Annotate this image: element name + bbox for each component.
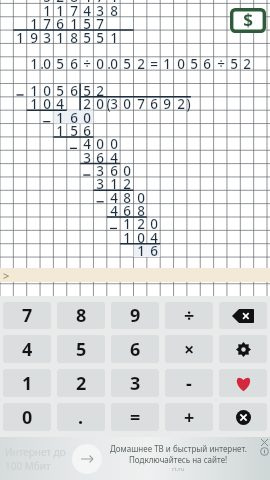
staticText: 1: [56, 29, 64, 47]
staticText: 3: [130, 371, 141, 396]
staticText: 8: [70, 29, 78, 47]
staticText: 1: [56, 109, 64, 127]
staticText: 6: [96, 149, 104, 167]
staticText: 0: [43, 55, 51, 73]
staticText: 2: [243, 55, 251, 73]
staticText: .: [40, 55, 44, 73]
button[interactable]: 6: [111, 335, 159, 363]
staticText: 7: [43, 15, 51, 33]
staticText: 3: [110, 95, 118, 113]
staticText: 8: [123, 189, 131, 207]
staticText: 5: [83, 82, 91, 100]
staticText: 0: [150, 215, 158, 233]
staticText: 3: [96, 162, 104, 180]
button[interactable]: Интернет до: [0, 437, 270, 480]
staticText: 6: [70, 82, 78, 100]
staticText: 2: [56, 0, 64, 6]
staticText: $: [243, 9, 253, 32]
staticText: 7: [96, 0, 104, 6]
staticText: 0: [123, 95, 131, 113]
staticText: .: [107, 55, 111, 73]
button[interactable]: -: [165, 369, 213, 397]
staticText: 100 Мбит: [5, 459, 51, 473]
button[interactable]: ÷: [165, 302, 213, 329]
staticText: 5: [56, 82, 64, 100]
button[interactable]: Favorites: [219, 369, 267, 397]
staticText: 8: [70, 0, 78, 6]
staticText: .: [78, 405, 84, 430]
staticText: 2: [96, 82, 104, 100]
button[interactable]: 0: [3, 403, 51, 431]
staticText: 0: [96, 55, 104, 73]
staticText: -: [186, 371, 192, 396]
staticText: 1: [43, 2, 51, 20]
staticText: 2: [177, 95, 185, 113]
button[interactable]: 7: [3, 302, 51, 329]
staticText: 1: [137, 242, 145, 260]
staticText: 4: [83, 0, 91, 6]
button[interactable]: 4: [3, 335, 51, 363]
button[interactable]: Close ad: [260, 438, 269, 447]
staticText: 9: [163, 95, 171, 113]
staticText: 1: [16, 29, 24, 47]
staticText: 8: [110, 2, 118, 20]
staticText: ÷: [184, 303, 195, 328]
staticText: 1: [163, 55, 171, 73]
staticText: 6: [83, 122, 91, 140]
button[interactable]: Ad info: [260, 447, 269, 456]
staticText: 8: [137, 202, 145, 220]
staticText: 0: [137, 229, 145, 247]
staticText: +: [184, 405, 195, 430]
staticText: 0: [43, 95, 51, 113]
staticText: 1: [123, 229, 131, 247]
other: Backspace: [232, 309, 254, 323]
button[interactable]: 5: [57, 335, 105, 363]
button[interactable]: 3: [111, 369, 159, 397]
staticText: 6: [130, 337, 141, 362]
staticText: +: [30, 0, 38, 6]
staticText: 1: [30, 95, 38, 113]
button[interactable]: ×: [165, 335, 213, 363]
staticText: 0: [123, 162, 131, 180]
staticText: ÷: [217, 55, 225, 73]
button[interactable]: =: [111, 403, 159, 431]
button[interactable]: >: [0, 268, 270, 282]
button[interactable]: 9: [111, 302, 159, 329]
staticText: 4: [56, 95, 64, 113]
button[interactable]: .: [57, 403, 105, 431]
staticText: 6: [123, 202, 131, 220]
staticText: 5: [43, 0, 51, 6]
staticText: 4: [150, 229, 158, 247]
staticText: 6: [70, 109, 78, 127]
staticText: 5: [230, 55, 238, 73]
staticText: 3: [43, 29, 51, 47]
button[interactable]: 1: [3, 369, 51, 397]
staticText: 5: [83, 29, 91, 47]
other: Settings: [236, 342, 251, 357]
button[interactable]: Currency converter: [230, 8, 266, 33]
staticText: 5: [56, 55, 64, 73]
staticText: 4: [110, 149, 118, 167]
staticText: 1: [56, 2, 64, 20]
staticText: 1: [30, 82, 38, 100]
staticText: 1: [30, 55, 38, 73]
staticText: 6: [150, 242, 158, 260]
button[interactable]: Clear: [219, 403, 267, 431]
staticText: 1: [110, 175, 118, 193]
button[interactable]: Backspace: [219, 302, 267, 329]
other: Favorites: [235, 375, 252, 392]
staticText: 0: [110, 55, 118, 73]
staticText: 0: [22, 405, 33, 430]
staticText: Подключайтесь на сайте!: [129, 454, 228, 465]
button[interactable]: +: [165, 403, 213, 431]
staticText: 6: [70, 55, 78, 73]
button[interactable]: 8: [57, 302, 105, 329]
button[interactable]: 2: [57, 369, 105, 397]
staticText: 9: [30, 29, 38, 47]
staticText: 0: [43, 82, 51, 100]
staticText: ÷: [83, 55, 91, 73]
staticText: =: [150, 55, 158, 73]
staticText: 0: [177, 55, 185, 73]
staticText: 5: [70, 122, 78, 140]
button[interactable]: Settings: [219, 335, 267, 363]
